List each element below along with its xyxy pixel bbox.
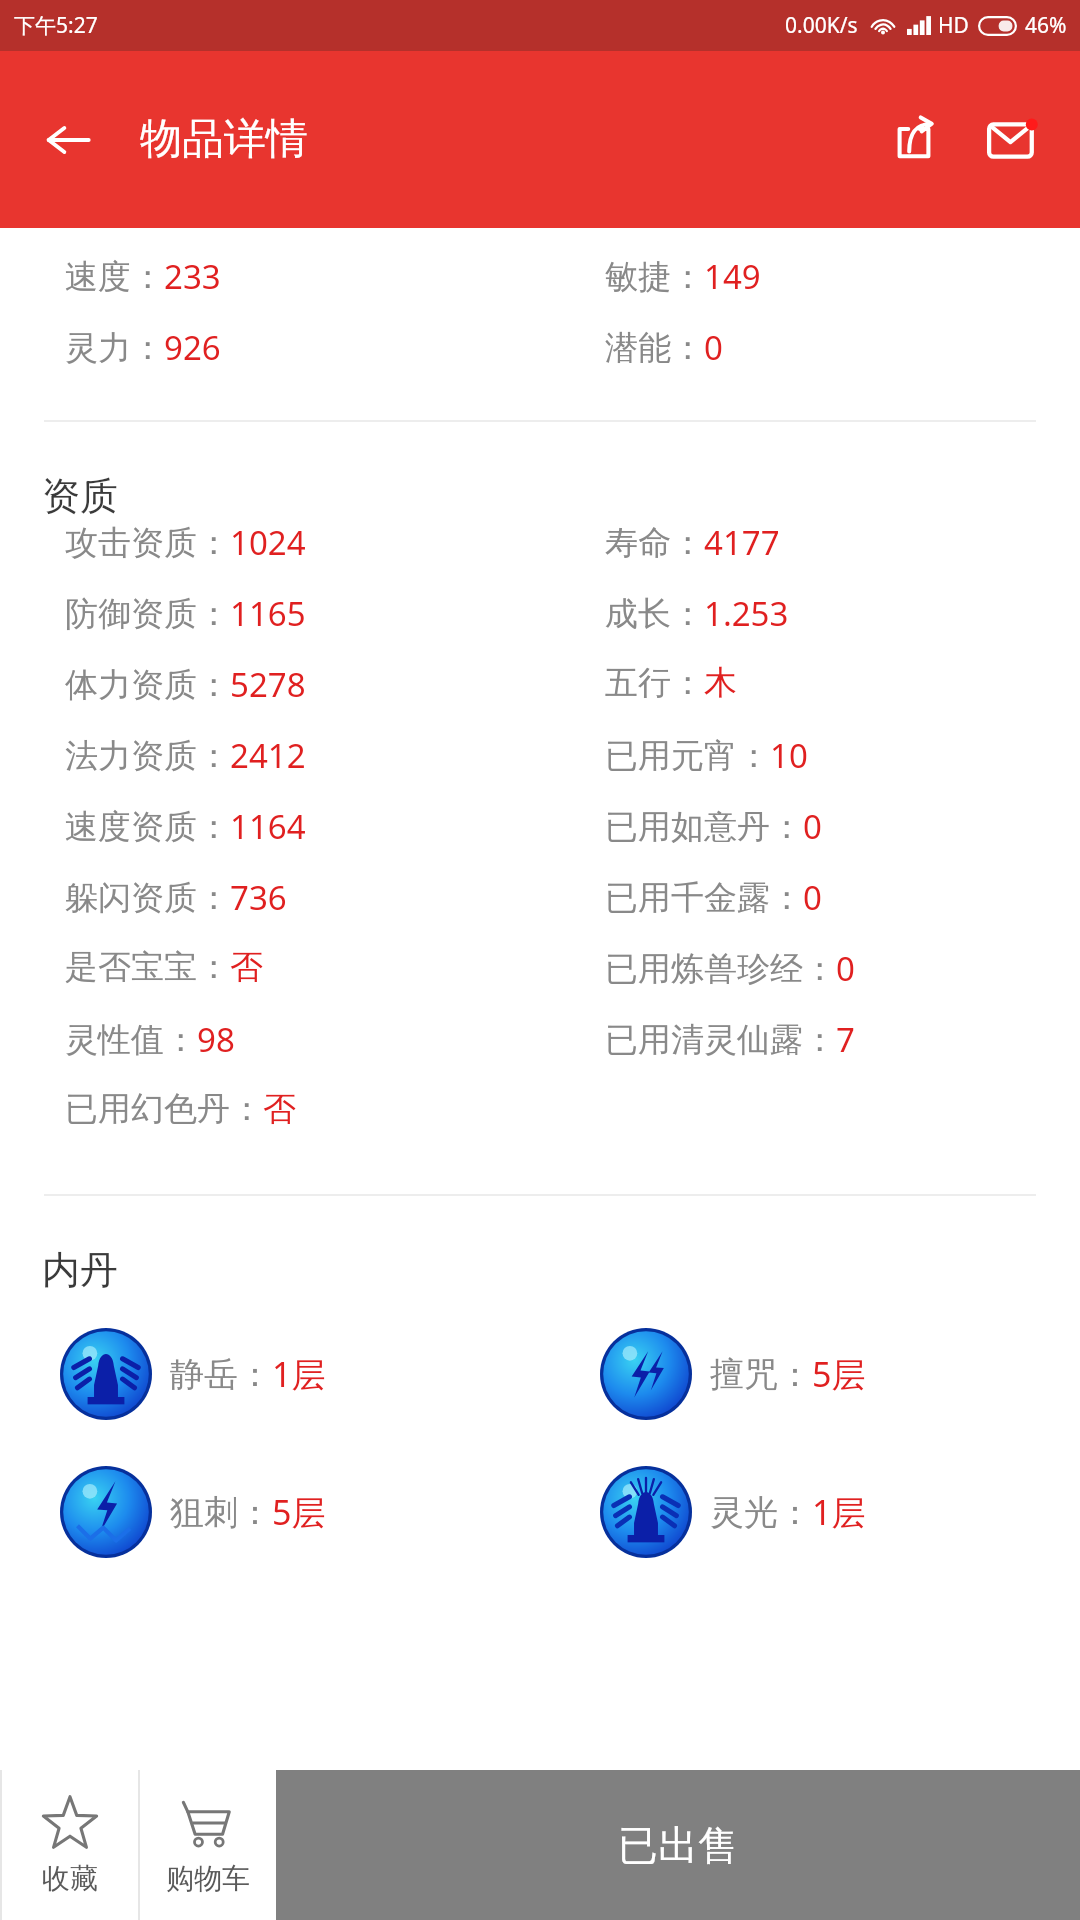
staticText: 1024 [230,520,306,565]
staticText: 已出售 [618,1820,738,1870]
staticText: 躲闪资质： [65,877,230,919]
staticText: 149 [704,254,761,299]
button[interactable]: 擅咒： [600,1324,1080,1424]
staticText: 98 [197,1017,235,1062]
staticText: 2412 [230,733,306,778]
staticText: 已用幻色丹： [65,1088,263,1130]
staticText: 10 [770,733,808,778]
staticText: 成长： [605,593,704,635]
button[interactable]: 灵光： [600,1462,1080,1562]
staticText: 下午5:27 [14,11,98,40]
staticText: 0.00K/s [785,11,858,40]
staticText: 擅咒： [710,1353,812,1396]
staticText: 物品详情 [140,113,308,166]
staticText: 否 [230,946,263,988]
staticText: 狙刺： [170,1491,272,1534]
staticText: 736 [230,875,287,920]
staticText: 926 [164,325,221,370]
staticText: 五行： [605,662,704,704]
staticText: 灵光： [710,1491,812,1534]
staticText: HD [938,11,969,40]
button[interactable]: Back [26,98,110,182]
staticText: 否 [263,1088,296,1130]
button[interactable]: 静岳： [60,1324,540,1424]
button[interactable]: 狙刺： [60,1462,540,1562]
button[interactable]: Share [870,96,958,184]
staticText: 5278 [230,662,306,707]
staticText: 速度： [65,256,164,298]
button[interactable]: 已出售 [276,1770,1080,1920]
staticText: 5层 [272,1489,326,1535]
staticText: 收藏 [42,1861,98,1896]
staticText: 购物车 [166,1861,250,1896]
staticText: 已用清灵仙露： [605,1019,836,1061]
staticText: 速度资质： [65,806,230,848]
staticText: 是否宝宝： [65,946,230,988]
staticText: 静岳： [170,1353,272,1396]
staticText: 体力资质： [65,664,230,706]
staticText: 已用千金露： [605,877,803,919]
staticText: 4177 [704,520,780,565]
staticText: 已用如意丹： [605,806,803,848]
button[interactable]: 收藏 [2,1770,138,1920]
staticText: 法力资质： [65,735,230,777]
staticText: 已用炼兽珍经： [605,948,836,990]
staticText: 0 [803,875,822,920]
staticText: 0 [836,946,855,991]
staticText: 寿命： [605,522,704,564]
staticText: 木 [704,662,737,704]
staticText: 敏捷： [605,256,704,298]
staticText: 1.253 [704,591,789,636]
staticText: 防御资质： [65,593,230,635]
staticText: 潜能： [605,327,704,369]
staticText: 1层 [812,1489,866,1535]
staticText: 46% [1025,11,1067,40]
staticText: 0 [803,804,822,849]
staticText: 5层 [812,1351,866,1397]
staticText: 1层 [272,1351,326,1397]
button[interactable]: Messages [968,96,1056,184]
staticText: 1165 [230,591,306,636]
staticText: 灵性值： [65,1019,197,1061]
staticText: 攻击资质： [65,522,230,564]
staticText: 已用元宵： [605,735,770,777]
staticText: 灵力： [65,327,164,369]
staticText: 内丹 [42,1246,118,1294]
staticText: 资质 [42,472,118,520]
staticText: 1164 [230,804,306,849]
staticText: 0 [704,325,723,370]
staticText: 7 [836,1017,855,1062]
button[interactable]: 购物车 [140,1770,276,1920]
staticText: 233 [164,254,221,299]
